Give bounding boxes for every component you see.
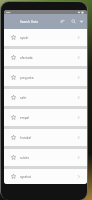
button[interactable]: Search	[69, 17, 78, 26]
staticText: subito	[20, 156, 30, 160]
staticText: Search Data	[20, 20, 38, 24]
staticText: hurakal	[20, 136, 31, 140]
button[interactable]: ayudr	[4, 29, 87, 46]
staticText: pregunta	[20, 76, 34, 80]
staticText: saltr	[20, 96, 27, 100]
button[interactable]: ayrahut	[4, 169, 87, 184]
staticText: ayudr	[20, 36, 29, 40]
button[interactable]: saltr	[4, 89, 87, 106]
staticText: afectada	[20, 56, 33, 60]
button[interactable]: subito	[4, 149, 87, 166]
button[interactable]: pregunta	[4, 69, 87, 86]
button[interactable]: afectada	[4, 49, 87, 66]
staticText: ayrahut	[20, 175, 32, 179]
staticText: empal	[20, 116, 30, 120]
button[interactable]: Sort	[58, 17, 67, 26]
button[interactable]: More options	[77, 17, 86, 26]
button[interactable]: hurakal	[4, 129, 87, 146]
button[interactable]: empal	[4, 109, 87, 126]
